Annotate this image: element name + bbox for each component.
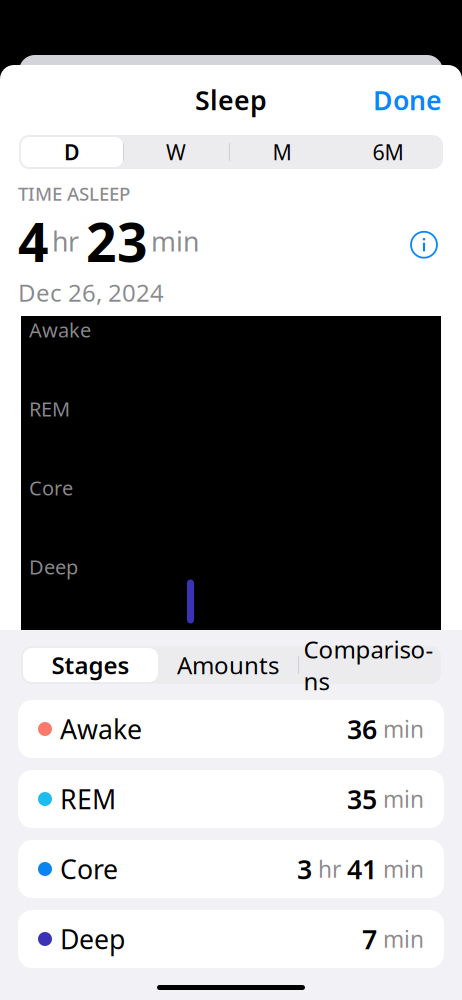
button[interactable]: 6M (335, 137, 441, 167)
staticText: Core (60, 851, 118, 887)
button[interactable]: D (21, 137, 123, 167)
staticText: 12 AM (20, 633, 78, 660)
staticText: Stages (51, 649, 129, 681)
staticText: M (272, 138, 291, 166)
staticText: min (377, 714, 424, 744)
staticText: min (377, 854, 424, 884)
button[interactable]: Comparisons (298, 648, 439, 682)
staticText: REM (60, 781, 116, 817)
staticText: 35 (347, 781, 377, 817)
button[interactable]: Deep (18, 910, 444, 968)
staticText: D (64, 138, 80, 166)
staticText: Awake (29, 316, 91, 343)
staticText: min (377, 784, 424, 814)
staticText: 41 (347, 851, 377, 887)
staticText: 36 (347, 711, 377, 747)
staticText: hr (52, 223, 79, 259)
staticText: Sleep (195, 82, 267, 118)
staticText: Comparisons (303, 633, 433, 697)
staticText: hr (312, 854, 347, 884)
staticText: Deep (29, 553, 78, 580)
staticText: TIME ASLEEP (18, 181, 130, 206)
button[interactable]: Amounts (158, 648, 298, 682)
button[interactable]: M (229, 137, 335, 167)
staticText: min (151, 223, 199, 259)
button[interactable]: W (123, 137, 229, 167)
staticText: min (377, 924, 424, 954)
staticText: Deep (60, 921, 125, 957)
staticText: 6M (372, 138, 403, 166)
button[interactable]: Stages (23, 648, 158, 682)
button[interactable]: Done (353, 74, 462, 126)
staticText: 23 (86, 206, 148, 277)
staticText: Awake (60, 711, 142, 747)
staticText: 6 AM (330, 633, 377, 660)
staticText: 3 (297, 851, 312, 887)
staticText: 4 (18, 206, 49, 277)
staticText: Dec 26, 2024 (18, 277, 164, 308)
staticText: Amounts (177, 649, 279, 681)
staticText: 2 AM (124, 633, 171, 660)
button[interactable]: About Time Asleep (404, 225, 444, 265)
staticText: Done (373, 82, 442, 118)
staticText: W (166, 138, 186, 166)
button[interactable]: REM (18, 770, 444, 828)
staticText: Core (29, 474, 73, 501)
button[interactable]: Core (18, 840, 444, 898)
staticText: 7 (362, 921, 377, 957)
staticText: 4 AM (228, 633, 275, 660)
button[interactable]: Awake (18, 700, 444, 758)
staticText: REM (29, 395, 70, 422)
